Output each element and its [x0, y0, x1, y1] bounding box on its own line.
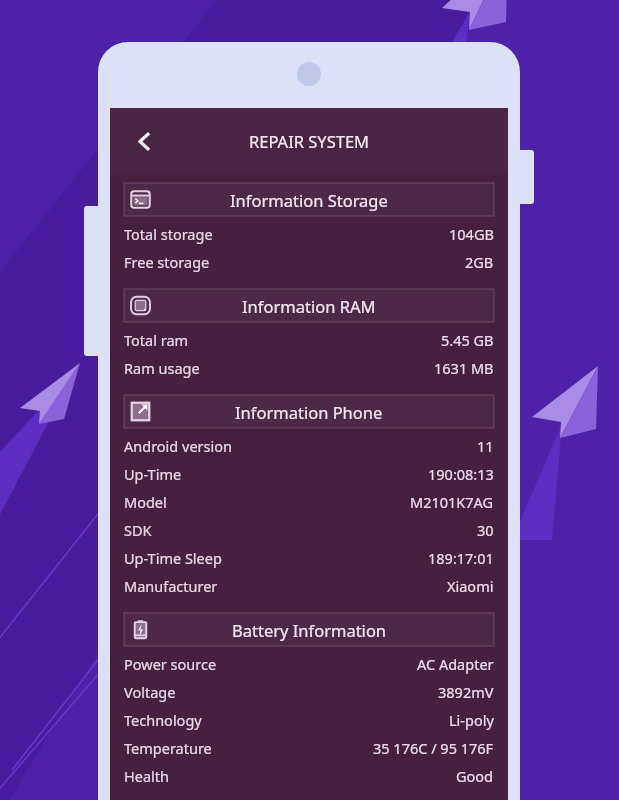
staticText: 190:08:13: [428, 464, 494, 484]
staticText: Power source: [124, 654, 217, 674]
staticText: REPAIR SYSTEM: [249, 130, 370, 152]
staticText: Ram usage: [124, 358, 200, 378]
staticText: 30: [477, 520, 494, 540]
button[interactable]: Information Phone: [124, 395, 494, 600]
staticText: Manufacturer: [124, 576, 218, 596]
staticText: 104GB: [449, 224, 494, 244]
staticText: 1631 MB: [434, 358, 494, 378]
staticText: Up-Time Sleep: [124, 548, 222, 568]
staticText: Information RAM: [242, 295, 376, 317]
staticText: Total storage: [124, 224, 213, 244]
staticText: Free storage: [124, 252, 210, 272]
staticText: SDK: [124, 520, 152, 540]
button[interactable]: Back: [123, 120, 165, 162]
staticText: 5.45 GB: [441, 330, 494, 350]
staticText: AC Adapter: [417, 654, 494, 674]
staticText: 189:17:01: [428, 548, 494, 568]
staticText: Total ram: [124, 330, 189, 350]
staticText: Information Storage: [230, 189, 388, 211]
staticText: Information Phone: [235, 401, 383, 423]
staticText: Li-poly: [449, 710, 494, 730]
staticText: Android version: [124, 436, 232, 456]
staticText: Voltage: [124, 682, 176, 702]
button[interactable]: Information Storage: [124, 183, 494, 276]
staticText: Up-Time: [124, 464, 182, 484]
staticText: Technology: [124, 710, 202, 730]
staticText: Temperature: [124, 738, 212, 758]
staticText: Model: [124, 492, 167, 512]
staticText: 35 176C / 95 176F: [373, 738, 494, 758]
staticText: M2101K7AG: [410, 492, 494, 512]
staticText: Battery Information: [232, 619, 387, 641]
staticText: 3892mV: [438, 682, 494, 702]
staticText: Health: [124, 766, 169, 786]
staticText: Good: [456, 766, 494, 786]
staticText: 2GB: [465, 252, 494, 272]
staticText: 11: [477, 436, 494, 456]
button[interactable]: Battery Information: [124, 613, 494, 790]
staticText: Xiaomi: [447, 576, 494, 596]
button[interactable]: Information RAM: [124, 289, 494, 382]
